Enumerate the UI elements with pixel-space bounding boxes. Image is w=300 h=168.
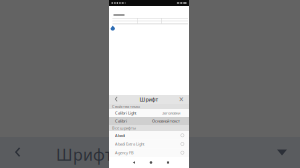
staticText: Все шрифты — [112, 125, 136, 131]
button[interactable]: Calibri Light — [109, 109, 189, 117]
staticText: Свойства темы — [112, 104, 140, 109]
button[interactable]: Abadi Extra Light — [109, 140, 189, 148]
staticText: Шрифт — [139, 96, 158, 103]
staticText: Шрифт — [56, 144, 112, 165]
button[interactable]: Abadi — [109, 131, 189, 140]
button[interactable]: Collapse player — [264, 137, 300, 168]
button[interactable]: Close — [177, 95, 186, 103]
button[interactable]: Back — [112, 95, 121, 103]
staticText: Calibri — [115, 118, 127, 124]
button[interactable]: Calibri — [109, 117, 189, 125]
staticText: Agency FB — [115, 150, 134, 155]
button[interactable]: Back — [127, 157, 141, 168]
staticText: Abadi — [115, 133, 125, 138]
staticText: Основной текст — [152, 118, 180, 124]
button[interactable]: Home — [144, 157, 158, 168]
staticText: × — [179, 94, 184, 105]
staticText: Abadi Extra Light — [115, 141, 144, 147]
staticText: Заголовки — [162, 110, 180, 116]
button[interactable]: Agency FB — [109, 148, 189, 157]
staticText: Calibri Light — [115, 110, 136, 116]
button[interactable]: Back — [0, 137, 36, 168]
button[interactable]: Recents — [161, 157, 175, 168]
